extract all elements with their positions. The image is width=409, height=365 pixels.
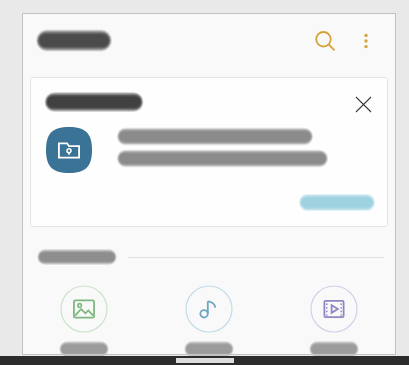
button[interactable] [271, 285, 396, 353]
button[interactable] [296, 194, 378, 211]
button[interactable]: Search [306, 22, 344, 60]
button[interactable]: More options [348, 23, 384, 59]
button[interactable]: Close [30, 77, 388, 227]
button[interactable] [22, 285, 146, 353]
button[interactable]: Close [346, 87, 380, 121]
button[interactable] [146, 285, 271, 353]
